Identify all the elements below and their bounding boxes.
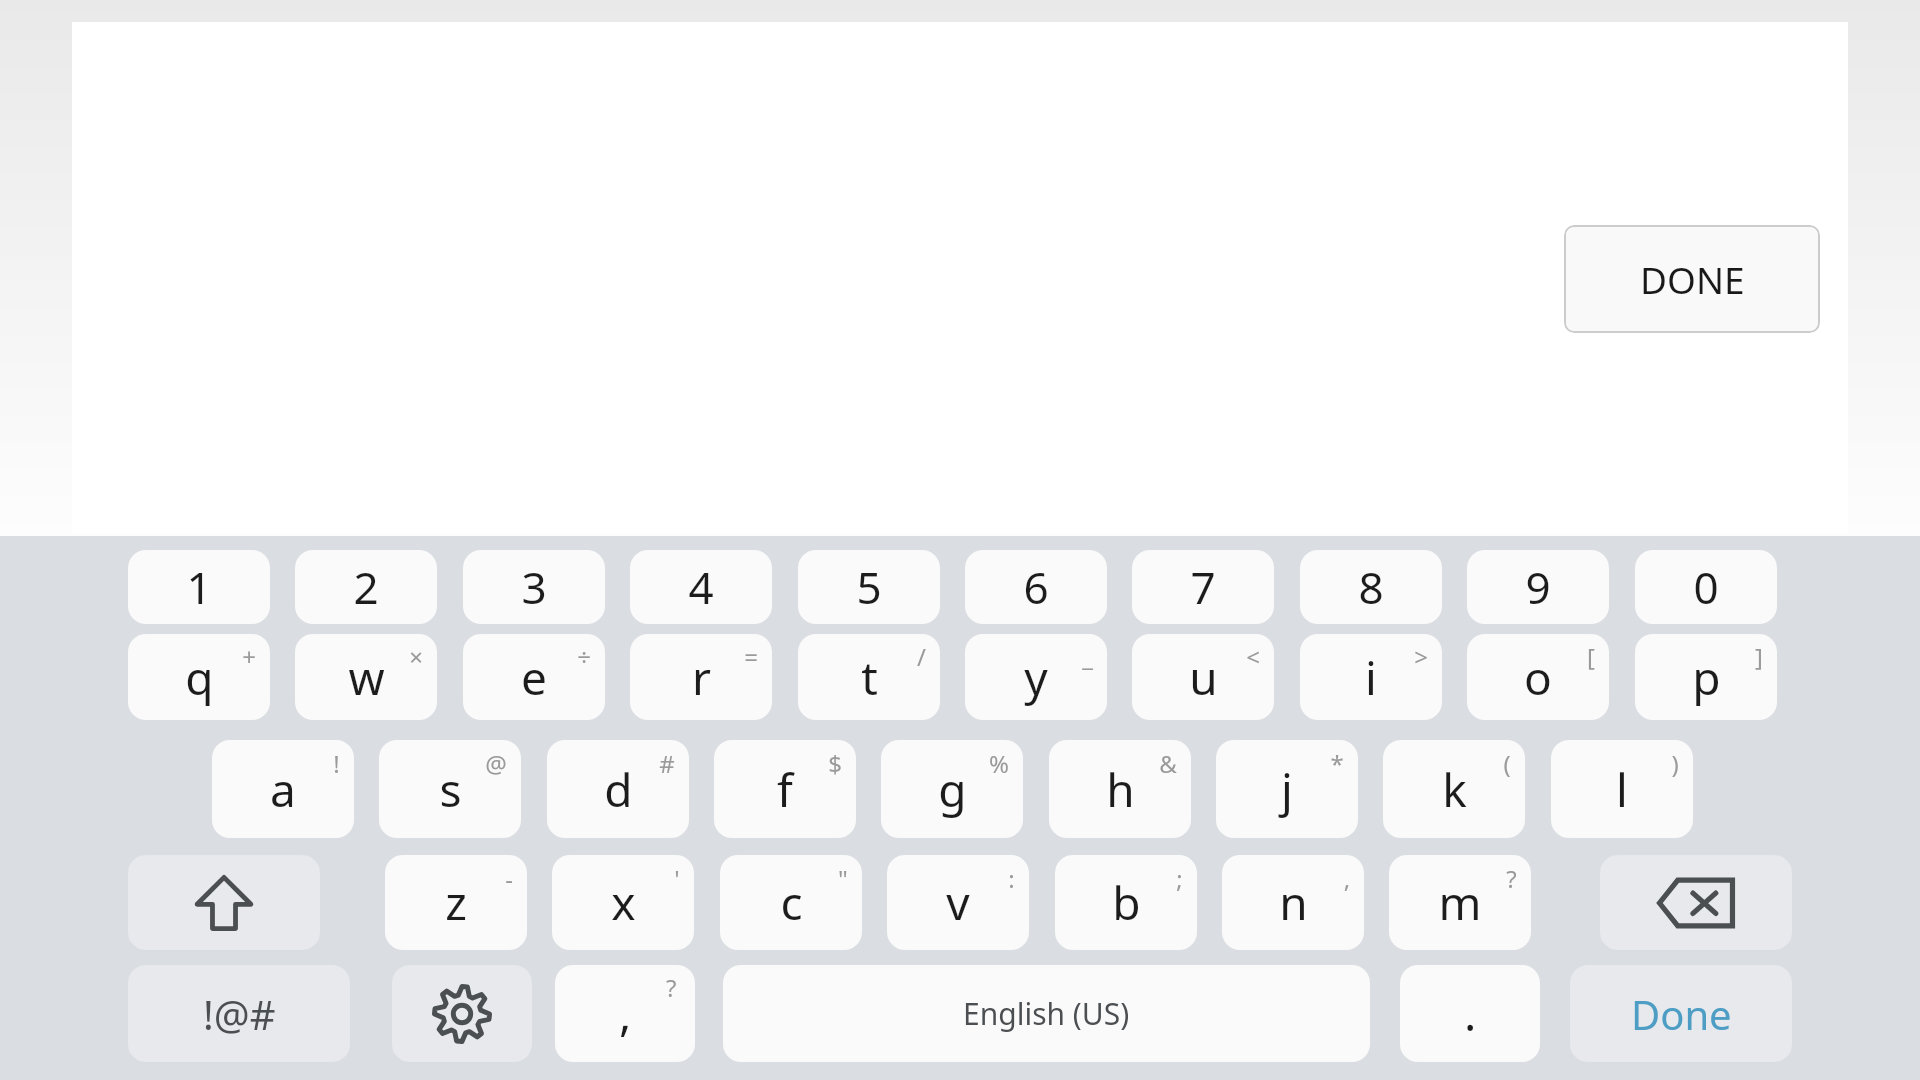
staticText: .: [1464, 982, 1477, 1045]
staticText: [: [1587, 640, 1595, 673]
button[interactable]: y: [965, 634, 1107, 720]
button[interactable]: .: [1400, 965, 1540, 1062]
staticText: n: [1279, 871, 1308, 934]
staticText: ‚: [1344, 862, 1350, 895]
button[interactable]: o: [1467, 634, 1609, 720]
staticText: ?: [666, 971, 677, 1004]
button[interactable]: DONE: [1564, 225, 1820, 333]
staticText: o: [1524, 646, 1552, 709]
button[interactable]: English (US): [723, 965, 1370, 1062]
button[interactable]: t: [798, 634, 940, 720]
staticText: y: [1024, 646, 1048, 709]
staticText: b: [1112, 871, 1141, 934]
staticText: @: [485, 747, 507, 780]
staticText: !@#: [203, 987, 276, 1041]
button[interactable]: h: [1049, 740, 1191, 838]
button[interactable]: v: [887, 855, 1029, 950]
staticText: 6: [1023, 557, 1049, 617]
staticText: 2: [353, 557, 379, 617]
button[interactable]: z: [385, 855, 527, 950]
staticText: l: [1616, 758, 1628, 821]
staticText: 3: [521, 557, 547, 617]
staticText: u: [1189, 646, 1218, 709]
button[interactable]: a: [212, 740, 354, 838]
staticText: !: [333, 747, 340, 780]
staticText: 9: [1525, 557, 1551, 617]
button[interactable]: k: [1383, 740, 1525, 838]
staticText: a: [270, 758, 296, 821]
staticText: 4: [688, 557, 714, 617]
button[interactable]: 7: [1132, 550, 1274, 624]
staticText: m: [1438, 871, 1482, 934]
button[interactable]: Backspace: [1600, 855, 1792, 950]
button[interactable]: q: [128, 634, 270, 720]
button[interactable]: g: [881, 740, 1023, 838]
button[interactable]: Settings: [392, 965, 532, 1062]
staticText: t: [861, 646, 878, 709]
button[interactable]: c: [720, 855, 862, 950]
button[interactable]: Done: [1570, 965, 1792, 1062]
button[interactable]: b: [1055, 855, 1197, 950]
button[interactable]: 6: [965, 550, 1107, 624]
staticText: <: [1246, 640, 1260, 673]
staticText: k: [1442, 758, 1467, 821]
staticText: f: [777, 758, 793, 821]
button[interactable]: 2: [295, 550, 437, 624]
button[interactable]: l: [1551, 740, 1693, 838]
other: Shift: [192, 871, 256, 935]
staticText: e: [521, 646, 547, 709]
staticText: c: [780, 871, 803, 934]
button[interactable]: ,: [555, 965, 695, 1062]
staticText: :: [1008, 862, 1015, 895]
button[interactable]: Shift: [128, 855, 320, 950]
button[interactable]: 9: [1467, 550, 1609, 624]
button[interactable]: m: [1389, 855, 1531, 950]
button[interactable]: 3: [463, 550, 605, 624]
button[interactable]: s: [379, 740, 521, 838]
staticText: z: [445, 871, 467, 934]
staticText: j: [1281, 758, 1293, 821]
button[interactable]: 5: [798, 550, 940, 624]
button[interactable]: p: [1635, 634, 1777, 720]
staticText: ': [674, 862, 680, 895]
staticText: r: [692, 646, 711, 709]
staticText: ÷: [577, 640, 591, 673]
button[interactable]: 1: [128, 550, 270, 624]
staticText: ?: [1506, 862, 1517, 895]
staticText: ×: [409, 640, 423, 673]
staticText: ;: [1176, 862, 1183, 895]
staticText: g: [938, 758, 967, 821]
staticText: 0: [1693, 557, 1719, 617]
button[interactable]: n: [1222, 855, 1364, 950]
staticText: s: [439, 758, 462, 821]
other: Settings: [433, 985, 491, 1043]
staticText: &: [1159, 747, 1177, 780]
staticText: d: [604, 758, 633, 821]
button[interactable]: j: [1216, 740, 1358, 838]
staticText: Done: [1631, 987, 1732, 1041]
staticText: $: [828, 747, 842, 780]
button[interactable]: 8: [1300, 550, 1442, 624]
button[interactable]: !@#: [128, 965, 350, 1062]
button[interactable]: d: [547, 740, 689, 838]
button[interactable]: w: [295, 634, 437, 720]
button[interactable]: u: [1132, 634, 1274, 720]
button[interactable]: 4: [630, 550, 772, 624]
button[interactable]: f: [714, 740, 856, 838]
button[interactable]: r: [630, 634, 772, 720]
staticText: English (US): [963, 993, 1130, 1034]
button[interactable]: i: [1300, 634, 1442, 720]
other: Backspace: [1658, 877, 1734, 929]
staticText: /: [917, 640, 926, 673]
button[interactable]: e: [463, 634, 605, 720]
staticText: %: [989, 747, 1009, 780]
staticText: 5: [856, 557, 882, 617]
staticText: h: [1106, 758, 1135, 821]
button[interactable]: 0: [1635, 550, 1777, 624]
button[interactable]: x: [552, 855, 694, 950]
staticText: *: [1330, 747, 1344, 780]
staticText: x: [611, 871, 636, 934]
staticText: 8: [1358, 557, 1384, 617]
staticText: 7: [1190, 557, 1216, 617]
staticText: q: [185, 646, 214, 709]
